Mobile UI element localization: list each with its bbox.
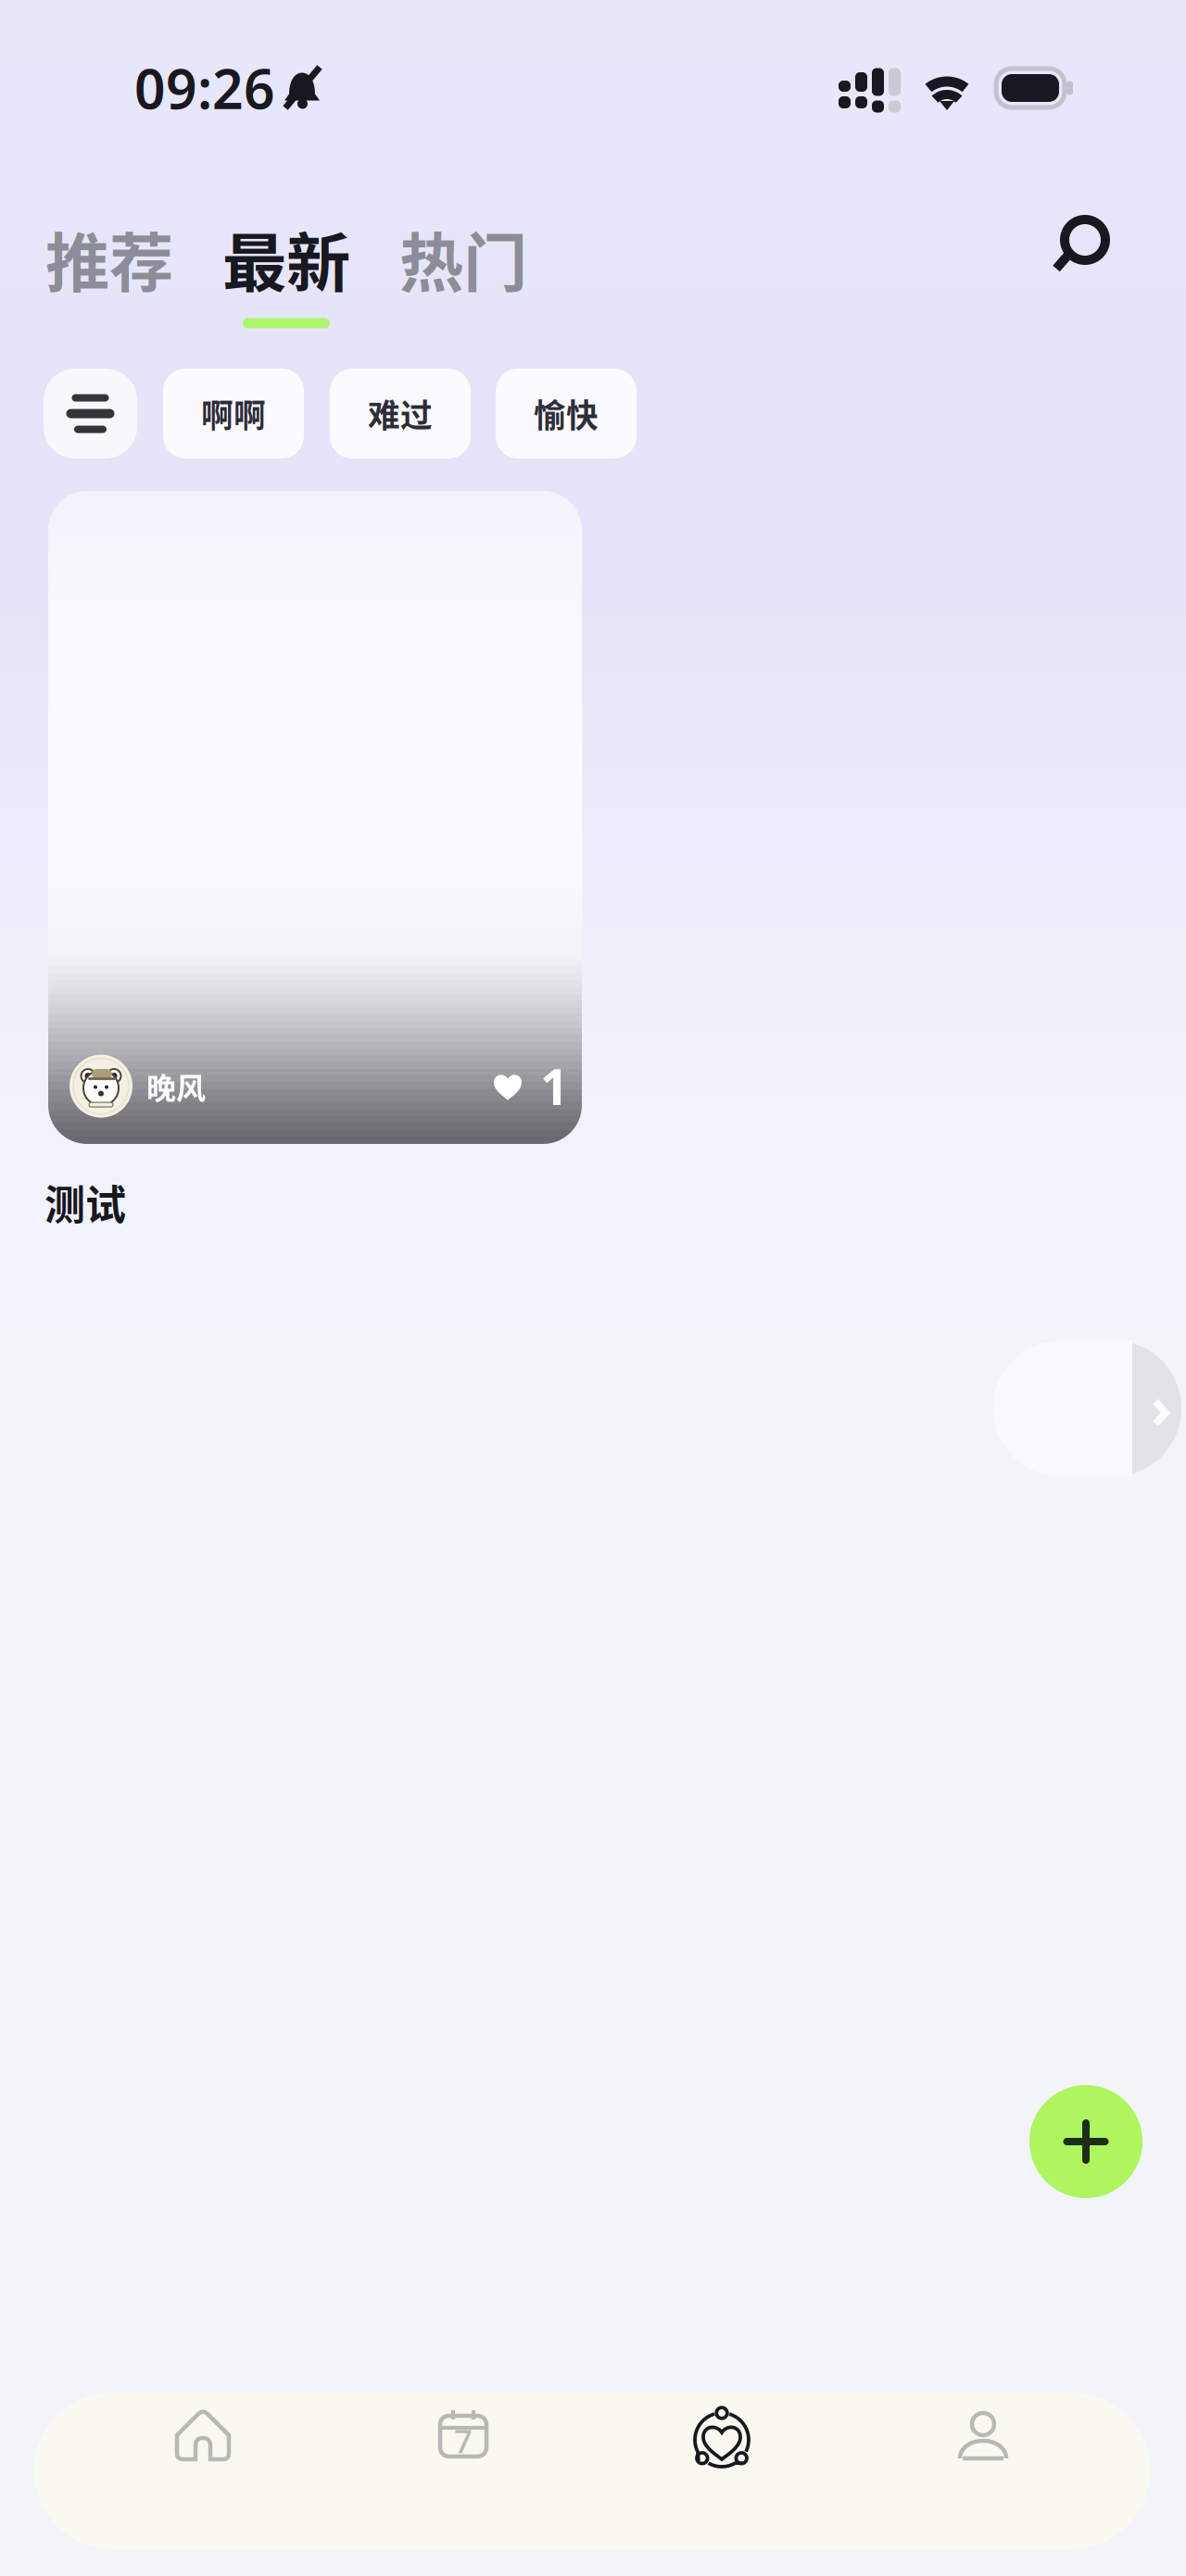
button[interactable]: Calendar [394,2396,533,2470]
button[interactable]: 晚风 [48,491,582,1144]
button[interactable]: 难过 [330,369,471,459]
button[interactable]: 啊啊 [163,369,304,459]
button[interactable]: Create [1029,2085,1142,2198]
button[interactable]: Open panel [992,1340,1181,1476]
button[interactable]: Profile [914,2396,1053,2470]
button[interactable]: 推荐 [44,212,174,297]
button[interactable]: Filter [44,369,137,459]
staticText: 1 [540,1053,569,1119]
staticText: 最新 [222,212,350,305]
button[interactable]: Moments [652,2404,791,2478]
staticText: 测试 [44,1173,126,1232]
staticText: 啊啊 [201,390,266,437]
button[interactable]: 愉快 [496,369,637,459]
button[interactable]: 最新 [221,212,351,297]
staticText: 09:26 [134,52,275,124]
button[interactable]: 热门 [398,212,528,297]
staticText: 推荐 [45,212,173,305]
button[interactable]: Home [133,2396,272,2470]
staticText: 晚风 [146,1065,206,1108]
staticText: 难过 [368,390,433,437]
staticText: 愉快 [534,390,599,437]
staticText: 热门 [399,212,527,305]
staticText: 7 [454,2419,473,2462]
button[interactable]: Search [1053,212,1110,277]
